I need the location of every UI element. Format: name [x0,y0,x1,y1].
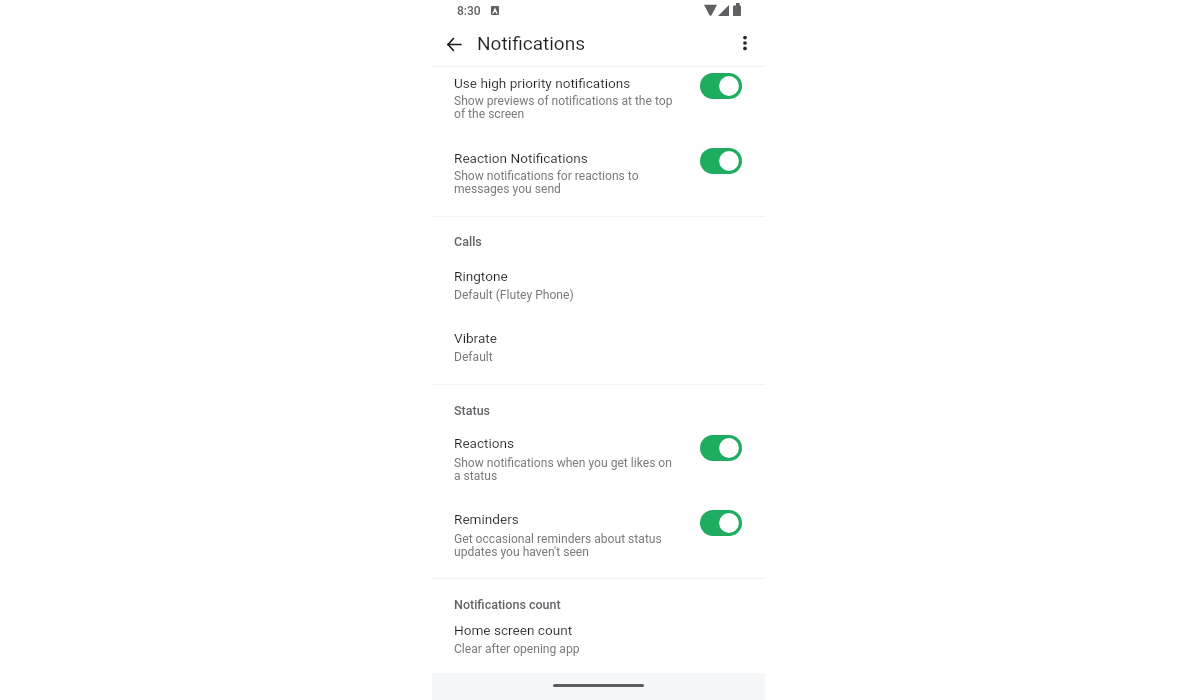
button[interactable]: Use high priority notifications [432,70,765,130]
button[interactable]: Use high priority notifications [693,69,749,103]
staticText: Show notifications when you get likes on… [454,456,672,483]
staticText: Reactions [454,435,515,451]
staticText: Notifications [477,32,586,54]
staticText: Vibrate [454,330,497,346]
staticText: Show notifications for reactions to mess… [454,169,639,196]
staticText: Ringtone [454,268,508,284]
staticText: Notifications count [454,597,561,612]
button[interactable]: Reactions [693,431,749,465]
button[interactable]: Reaction Notifications [693,144,749,178]
button[interactable]: Ringtone [432,262,765,308]
staticText: Use high priority notifications [454,75,631,91]
button[interactable]: Reminders [693,506,749,540]
staticText: Show previews of notifications at the to… [454,94,673,121]
staticText: Calls [454,234,482,249]
staticText: Default (Flutey Phone) [454,288,574,302]
staticText: Status [454,403,491,418]
button[interactable]: Navigate up [435,25,473,63]
button[interactable]: Reactions [432,430,765,490]
staticText: Home screen count [454,622,573,638]
staticText: Reminders [454,511,519,527]
button[interactable]: More options [726,24,764,62]
button[interactable]: Vibrate [432,324,765,370]
staticText: Clear after opening app [454,642,580,656]
button[interactable]: Reaction Notifications [432,144,765,202]
staticText: Reaction Notifications [454,150,588,166]
staticText: Default [454,350,493,364]
staticText: 8:30 [457,4,481,18]
button[interactable]: Reminders [432,506,765,566]
staticText: Get occasional reminders about status up… [454,532,662,559]
button[interactable]: Home screen count [432,616,765,662]
